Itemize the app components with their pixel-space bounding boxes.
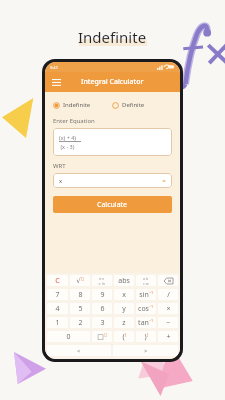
button[interactable]: < <box>47 345 111 356</box>
staticText: − <box>166 318 171 328</box>
staticText: Calculate <box>97 200 128 210</box>
button[interactable]: 2 <box>70 317 90 328</box>
staticText: 7 <box>55 290 60 300</box>
staticText: 1 <box>55 318 60 328</box>
button[interactable]: □ <box>92 331 112 342</box>
staticText: (x - 3) <box>59 143 75 150</box>
staticText: Definite <box>122 101 145 109</box>
staticText: z <box>122 318 126 328</box>
button[interactable]: √ <box>70 275 90 286</box>
button[interactable]: π e <box>92 275 112 286</box>
staticText: c w <box>143 281 149 286</box>
staticText: □ <box>97 333 104 341</box>
staticText: √ <box>76 277 81 285</box>
button[interactable]: sin <box>136 289 156 300</box>
staticText: ) <box>144 332 147 342</box>
button[interactable]: 4 <box>47 303 68 314</box>
staticText: ] <box>147 332 149 337</box>
button[interactable]: cos <box>136 303 156 314</box>
staticText: Integral Calculator <box>81 77 144 87</box>
button[interactable]: 7 <box>47 289 68 300</box>
staticText: −1 <box>149 290 154 295</box>
staticText: / <box>167 290 170 300</box>
button[interactable]: 5 <box>70 303 90 314</box>
button[interactable]: x <box>114 289 134 300</box>
staticText: sin <box>139 290 149 300</box>
button[interactable]: Definite <box>112 99 172 111</box>
staticText: 5 <box>78 304 83 314</box>
staticText: Indefinite <box>63 101 91 109</box>
staticText: 9 <box>100 290 105 300</box>
button[interactable]: + <box>158 331 178 342</box>
staticText: tan <box>138 318 149 328</box>
staticText: × <box>166 304 171 314</box>
staticText: 3 <box>100 318 105 328</box>
staticText: □ <box>81 277 85 281</box>
button[interactable]: / <box>158 289 178 300</box>
button[interactable]: (x) + 4) <box>53 128 172 156</box>
staticText: π e <box>99 276 105 281</box>
staticText: Indefinite <box>78 27 147 47</box>
staticText: abs <box>118 276 130 286</box>
button[interactable]: × <box>158 303 178 314</box>
staticText: (x) + 4) <box>59 134 77 141</box>
button[interactable]: > <box>113 345 178 356</box>
button[interactable]: z <box>114 317 134 328</box>
staticText: 9:41 <box>50 65 58 70</box>
button[interactable]: a b <box>136 275 156 286</box>
staticText: x <box>59 177 63 185</box>
button[interactable]: Indefinite <box>53 99 112 111</box>
staticText: ( <box>122 332 125 342</box>
staticText: 0 <box>66 332 71 342</box>
staticText: 4 <box>55 304 60 314</box>
button[interactable]: 9 <box>92 289 112 300</box>
button[interactable]: ( <box>114 331 134 342</box>
staticText: > <box>144 347 148 355</box>
staticText: −1 <box>149 318 154 323</box>
staticText: WRT <box>53 162 66 170</box>
button[interactable]: 6 <box>92 303 112 314</box>
button[interactable]: Calculate <box>53 196 172 213</box>
staticText: 8 <box>78 290 83 300</box>
staticText: x <box>122 290 126 300</box>
staticText: 2 <box>78 318 83 328</box>
staticText: Enter Equation <box>53 117 95 125</box>
button[interactable]: Backspace <box>158 275 178 286</box>
button[interactable]: ) <box>136 331 156 342</box>
button[interactable]: 1 <box>47 317 68 328</box>
staticText: a b <box>143 276 149 281</box>
staticText: −1 <box>149 304 154 309</box>
button[interactable]: − <box>158 317 178 328</box>
staticText: 6 <box>100 304 105 314</box>
button[interactable]: Open navigation menu <box>50 76 62 88</box>
button[interactable]: abs <box>114 275 134 286</box>
staticText: C <box>55 276 60 286</box>
staticText: cos <box>138 304 149 314</box>
staticText: y <box>122 304 126 314</box>
staticText: + <box>166 332 171 342</box>
button[interactable]: 3 <box>92 317 112 328</box>
staticText: ∞ ln <box>98 281 106 286</box>
button[interactable]: x <box>53 173 172 188</box>
button[interactable]: tan <box>136 317 156 328</box>
button[interactable]: y <box>114 303 134 314</box>
staticText: □ <box>104 333 108 337</box>
button[interactable]: 8 <box>70 289 90 300</box>
button[interactable]: 0 <box>47 331 90 342</box>
button[interactable]: C <box>47 275 68 286</box>
staticText: < <box>77 347 81 355</box>
staticText: [ <box>125 332 127 337</box>
